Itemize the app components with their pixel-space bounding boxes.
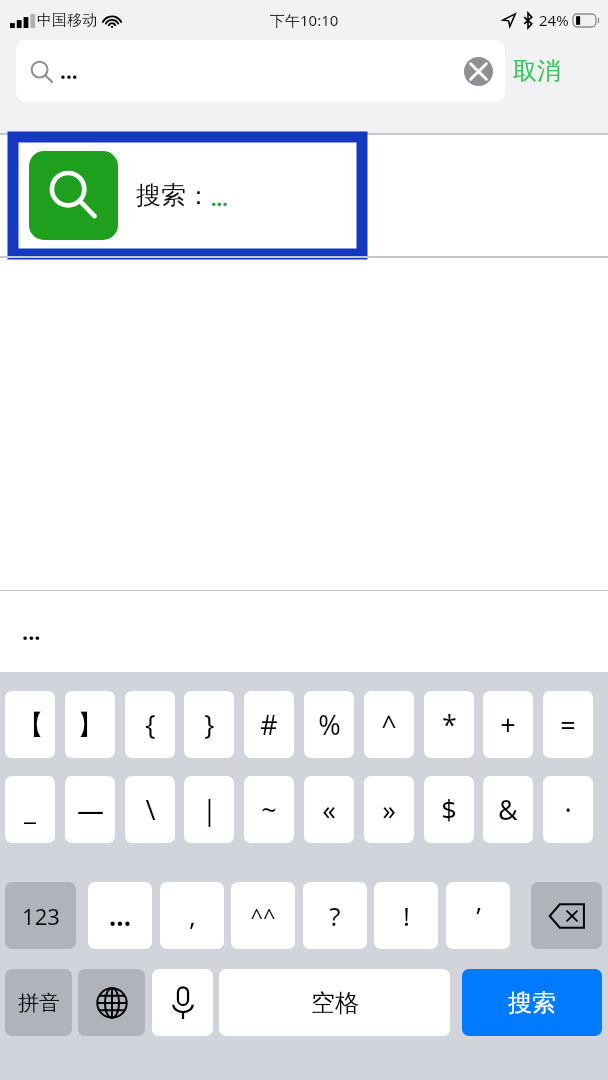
- staticText: $: [441, 791, 457, 828]
- staticText: +: [500, 706, 516, 743]
- staticText: %: [318, 706, 341, 743]
- button[interactable]: 】: [65, 691, 115, 758]
- button[interactable]: 搜索: [462, 969, 602, 1036]
- staticText: ,: [189, 898, 196, 933]
- button[interactable]: {: [125, 691, 175, 758]
- staticText: ’: [476, 898, 481, 933]
- button[interactable]: ^: [364, 691, 414, 758]
- staticText: 搜索: [508, 988, 556, 1018]
- staticText: »: [382, 791, 396, 828]
- staticText: &: [498, 791, 518, 828]
- staticText: 拼音: [18, 990, 60, 1016]
- button[interactable]: ...: [22, 616, 41, 646]
- button[interactable]: }: [184, 691, 234, 758]
- button[interactable]: ’: [446, 882, 510, 949]
- button[interactable]: =: [543, 691, 593, 758]
- button[interactable]: »: [364, 776, 414, 843]
- staticText: !: [403, 898, 410, 933]
- button[interactable]: Voice input: [152, 969, 213, 1036]
- staticText: ?: [329, 898, 341, 933]
- button[interactable]: 123: [5, 882, 76, 949]
- staticText: =: [560, 706, 576, 743]
- button[interactable]: Clear text: [464, 57, 493, 86]
- button[interactable]: Switch keyboard language: [78, 969, 145, 1036]
- staticText: |: [202, 791, 217, 828]
- staticText: 下午10:10: [270, 10, 339, 30]
- button[interactable]: #: [244, 691, 294, 758]
- staticText: ...: [22, 616, 41, 646]
- button[interactable]: ?: [303, 882, 367, 949]
- staticText: ~: [261, 791, 277, 828]
- staticText: 123: [22, 901, 60, 931]
- staticText: ^: [381, 706, 397, 743]
- button[interactable]: |: [184, 776, 234, 843]
- staticText: 中国移动: [37, 11, 97, 30]
- button[interactable]: ·: [543, 776, 593, 843]
- staticText: \: [145, 791, 156, 828]
- button[interactable]: «: [304, 776, 354, 843]
- button[interactable]: _: [5, 776, 55, 843]
- button[interactable]: 【: [5, 691, 55, 758]
- button[interactable]: %: [304, 691, 354, 758]
- staticText: _: [24, 791, 36, 828]
- button[interactable]: 空格: [219, 969, 450, 1036]
- staticText: 空格: [311, 988, 359, 1018]
- staticText: }: [204, 706, 215, 743]
- staticText: 24%: [539, 10, 569, 30]
- staticText: 】: [77, 708, 104, 742]
- staticText: ...: [109, 898, 131, 933]
- button[interactable]: 拼音: [5, 969, 72, 1036]
- button[interactable]: ...: [16, 40, 505, 102]
- staticText: #: [260, 706, 278, 743]
- staticText: ...: [60, 57, 78, 86]
- staticText: 【: [17, 708, 44, 742]
- button[interactable]: *: [424, 691, 474, 758]
- staticText: ^^: [250, 901, 276, 931]
- button[interactable]: ,: [160, 882, 224, 949]
- staticText: —: [77, 791, 104, 828]
- button[interactable]: \: [125, 776, 175, 843]
- button[interactable]: Backspace: [531, 882, 602, 949]
- staticText: ·: [564, 791, 572, 828]
- button[interactable]: &: [483, 776, 533, 843]
- staticText: 搜索：: [136, 180, 211, 211]
- staticText: 取消: [513, 56, 561, 86]
- staticText: ...: [211, 185, 228, 212]
- button[interactable]: 搜索：: [0, 135, 608, 256]
- button[interactable]: +: [483, 691, 533, 758]
- staticText: «: [322, 791, 336, 828]
- button[interactable]: —: [65, 776, 115, 843]
- staticText: {: [145, 706, 156, 743]
- button[interactable]: ~: [244, 776, 294, 843]
- button[interactable]: ^^: [231, 882, 295, 949]
- button[interactable]: $: [424, 776, 474, 843]
- button[interactable]: ...: [88, 882, 152, 949]
- button[interactable]: 取消: [513, 40, 561, 102]
- staticText: *: [442, 706, 457, 743]
- button[interactable]: !: [374, 882, 438, 949]
